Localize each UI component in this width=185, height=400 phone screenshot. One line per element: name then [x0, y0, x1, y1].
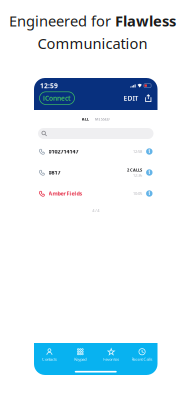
staticText: Keypad [74, 356, 86, 362]
staticText: Engineered for [9, 11, 115, 30]
button[interactable]: ALL [82, 115, 89, 123]
staticText: Recent Calls [132, 356, 153, 362]
staticText: ALL [82, 116, 89, 122]
button[interactable]: EDIT [123, 92, 140, 105]
staticText: Favorites [103, 356, 119, 362]
button[interactable]: iConnect [39, 92, 74, 104]
button[interactable]: Amber Fields [34, 183, 157, 204]
staticText: Contacts [42, 356, 57, 362]
staticText: 0817 [48, 169, 60, 176]
button[interactable]: MISSED [95, 115, 110, 123]
staticText: Flawless [115, 11, 176, 30]
staticText: Amber Fields [48, 190, 82, 197]
button[interactable]: Share [140, 93, 152, 103]
staticText: 12:58 [133, 149, 142, 154]
button[interactable]: Favorites [96, 346, 127, 364]
staticText: 0102714147 [48, 148, 78, 155]
button[interactable]: 0102714147 [34, 141, 157, 162]
button[interactable]: 0817 [34, 162, 157, 183]
staticText: 2 CALLS [127, 167, 142, 172]
button[interactable]: Contacts [34, 346, 65, 364]
staticText: 12:36 [133, 172, 142, 178]
staticText: Communication [37, 33, 147, 53]
button[interactable]: Keypad [65, 346, 96, 364]
staticText: 10:05 [133, 191, 142, 196]
staticText: 12:59 [40, 81, 58, 90]
staticText: iConnect [43, 94, 71, 103]
button[interactable] [34, 128, 157, 139]
button[interactable]: Recent Calls [127, 346, 157, 364]
staticText: 4 / 4 [92, 208, 99, 213]
staticText: EDIT [124, 94, 139, 103]
staticText: MISSED [95, 116, 110, 122]
